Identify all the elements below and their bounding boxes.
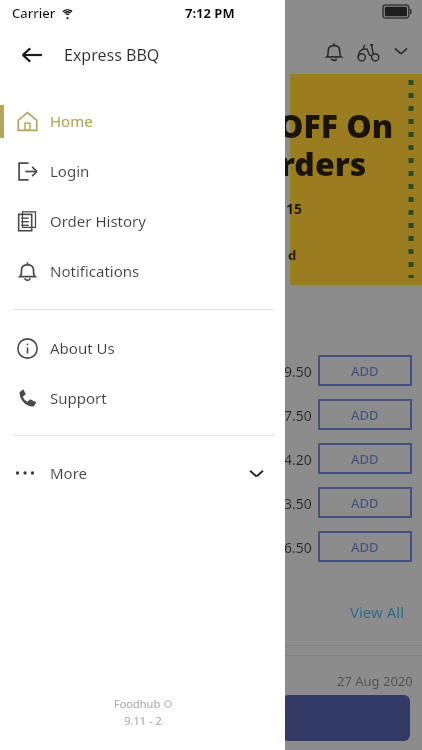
staticText: More bbox=[50, 463, 88, 483]
staticText: 9.11 - 2 bbox=[124, 713, 162, 728]
staticText: d bbox=[288, 246, 297, 264]
button[interactable]: Order History bbox=[0, 196, 285, 246]
button[interactable]: About Us bbox=[0, 323, 285, 373]
staticText: ADD bbox=[351, 406, 379, 424]
staticText: Login bbox=[50, 161, 90, 181]
button[interactable]: ADD bbox=[319, 356, 411, 385]
staticText: ADD bbox=[351, 450, 379, 468]
staticText: ADD bbox=[351, 494, 379, 512]
staticText: About Us bbox=[50, 338, 115, 358]
staticText: 7:12 PM bbox=[185, 4, 235, 22]
staticText: rders bbox=[280, 142, 367, 186]
button[interactable]: Home bbox=[0, 96, 285, 146]
button[interactable]: More bbox=[0, 448, 285, 498]
staticText: 3.50 bbox=[284, 494, 312, 513]
button[interactable]: Login bbox=[0, 146, 285, 196]
staticText: 15 bbox=[286, 199, 303, 218]
staticText: OFF On bbox=[278, 104, 394, 148]
staticText: 6.50 bbox=[284, 538, 312, 557]
button[interactable]: Expand bbox=[386, 36, 416, 66]
staticText: Notifications bbox=[50, 261, 140, 281]
button[interactable]: Notifications bbox=[0, 246, 285, 296]
button[interactable]: Checkout bbox=[282, 695, 410, 741]
staticText: 9.50 bbox=[284, 362, 312, 381]
button[interactable]: ADD bbox=[319, 400, 411, 429]
staticText: Express BBQ bbox=[64, 44, 160, 66]
button[interactable]: ADD bbox=[319, 488, 411, 517]
staticText: View All bbox=[350, 602, 405, 622]
staticText: Support bbox=[50, 388, 107, 408]
button[interactable]: View All bbox=[350, 602, 405, 622]
staticText: ADD bbox=[351, 362, 379, 380]
button[interactable]: ADD bbox=[319, 444, 411, 473]
button[interactable]: ADD bbox=[319, 532, 411, 561]
button[interactable]: Notifications bbox=[318, 36, 350, 68]
button[interactable]: Support bbox=[0, 373, 285, 423]
staticText: 7.50 bbox=[284, 406, 312, 425]
staticText: Foodhub bbox=[114, 696, 161, 711]
staticText: ADD bbox=[351, 538, 379, 556]
button[interactable]: Delivery bbox=[352, 36, 384, 68]
staticText: 27 Aug 2020 bbox=[337, 672, 413, 690]
staticText: Order History bbox=[50, 211, 146, 231]
staticText: 4.20 bbox=[284, 450, 312, 469]
button[interactable]: Back bbox=[12, 35, 52, 75]
staticText: Home bbox=[50, 111, 93, 131]
staticText: Carrier bbox=[12, 4, 56, 22]
